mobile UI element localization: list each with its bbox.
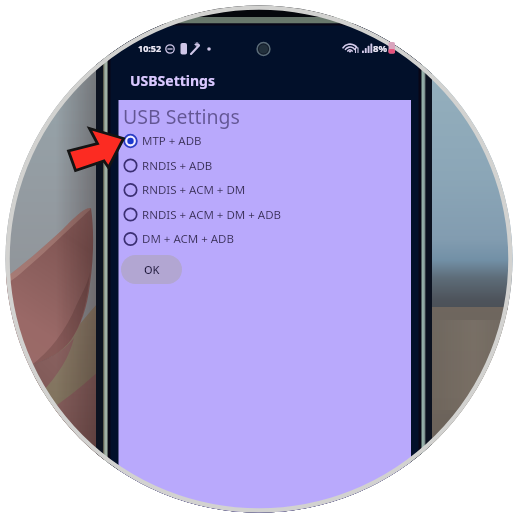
button[interactable]: OK bbox=[121, 255, 182, 284]
staticText: RNDIS + ADB bbox=[142, 158, 213, 174]
staticText: USBSettings bbox=[130, 71, 215, 90]
staticText: DM + ACM + ADB bbox=[142, 231, 234, 247]
staticText: RNDIS + ACM + DM + ADB bbox=[142, 207, 282, 223]
staticText: 8% bbox=[373, 42, 388, 55]
staticText: MTP + ADB bbox=[142, 133, 202, 149]
button[interactable] bbox=[119, 179, 409, 201]
staticText: USB Settings bbox=[123, 103, 240, 130]
button[interactable] bbox=[119, 228, 409, 250]
staticText: 10:52 bbox=[138, 42, 162, 54]
button[interactable] bbox=[119, 155, 409, 177]
staticText: RNDIS + ACM + DM bbox=[142, 182, 246, 198]
staticText: OK bbox=[144, 262, 160, 277]
button[interactable] bbox=[118, 62, 411, 100]
button[interactable] bbox=[119, 130, 409, 152]
button[interactable] bbox=[119, 204, 409, 226]
